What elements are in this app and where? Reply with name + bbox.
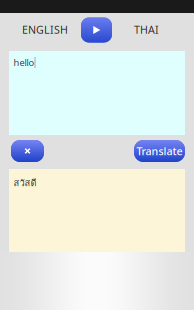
staticText: สวัสดี [13, 176, 36, 190]
staticText: Translate [136, 144, 182, 158]
staticText: hello [13, 56, 34, 69]
button[interactable]: Translate [134, 140, 185, 162]
button[interactable]: THAI [106, 15, 187, 44]
button[interactable]: hello [9, 51, 185, 135]
button[interactable]: Speak [81, 17, 112, 42]
button[interactable]: Clear [11, 140, 44, 162]
staticText: THAI [134, 22, 159, 37]
button[interactable]: ENGLISH [4, 15, 85, 44]
staticText: ENGLISH [22, 22, 68, 37]
